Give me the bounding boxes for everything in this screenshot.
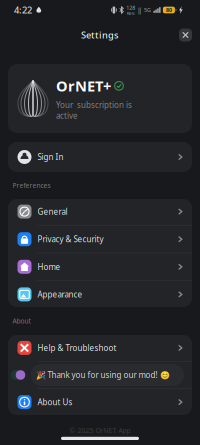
staticText: 128 [126, 4, 135, 11]
button[interactable]: Sign In [8, 142, 192, 172]
staticText: Appearance [37, 289, 82, 300]
staticText: Help & Troubleshoot [37, 343, 116, 353]
staticText: OrNET+ [56, 76, 111, 96]
staticText: KB/s [127, 11, 135, 16]
staticText: Preferences [12, 181, 50, 190]
button[interactable]: General [8, 198, 192, 225]
button[interactable]: 🎉 Thank you for using our mod! 😊 [8, 362, 192, 388]
staticText: © 2025 OrNET App [69, 426, 130, 435]
button[interactable]: Help & Troubleshoot [8, 334, 192, 361]
button[interactable]: Appearance [8, 281, 192, 308]
staticText: Your subscription is active [56, 100, 132, 121]
button[interactable]: Home [8, 253, 192, 280]
staticText: About Us [37, 397, 72, 407]
button[interactable]: Privacy & Security [8, 226, 192, 253]
staticText: 80 [166, 6, 172, 14]
staticText: Sign In [37, 152, 63, 162]
staticText: 4:22 [14, 4, 32, 16]
button[interactable]: Close [174, 24, 196, 46]
staticText: Settings [81, 29, 119, 41]
button[interactable]: About Us [8, 389, 192, 416]
staticText: Privacy & Security [37, 234, 103, 244]
staticText: ‖ [138, 6, 142, 14]
staticText: About [12, 317, 30, 325]
staticText: 🎉 Thank you for using our mod! 😊 [35, 370, 169, 380]
staticText: 5G [144, 6, 151, 14]
staticText: General [37, 206, 67, 217]
staticText: Home [37, 261, 60, 272]
